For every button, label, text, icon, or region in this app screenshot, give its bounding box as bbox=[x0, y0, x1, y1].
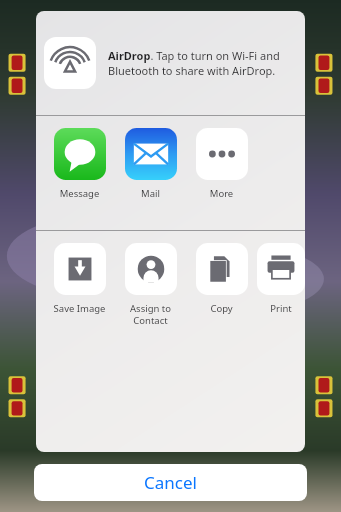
staticText: Cancel bbox=[144, 471, 197, 494]
button[interactable]: Copy bbox=[186, 243, 257, 315]
staticText: Copy bbox=[186, 302, 257, 315]
staticText: Mail bbox=[115, 187, 186, 200]
button[interactable]: AirDrop. Tap to turn on Wi-Fi and Blueto… bbox=[36, 11, 305, 115]
staticText: Print bbox=[257, 302, 305, 315]
staticText: Message bbox=[44, 187, 115, 200]
staticText: Assign to Contact bbox=[115, 302, 186, 327]
staticText: Save Image bbox=[44, 302, 115, 315]
button[interactable]: Print bbox=[257, 243, 305, 315]
button[interactable]: Cancel bbox=[34, 464, 307, 501]
button[interactable]: Message bbox=[44, 128, 115, 200]
button[interactable]: Assign to Contact bbox=[115, 243, 186, 327]
staticText: AirDrop. Tap to turn on Wi-Fi and Blueto… bbox=[108, 48, 295, 78]
button[interactable]: Mail bbox=[115, 128, 186, 200]
staticText: More bbox=[186, 187, 257, 200]
button[interactable]: Save Image bbox=[44, 243, 115, 315]
button[interactable]: More bbox=[186, 128, 257, 200]
